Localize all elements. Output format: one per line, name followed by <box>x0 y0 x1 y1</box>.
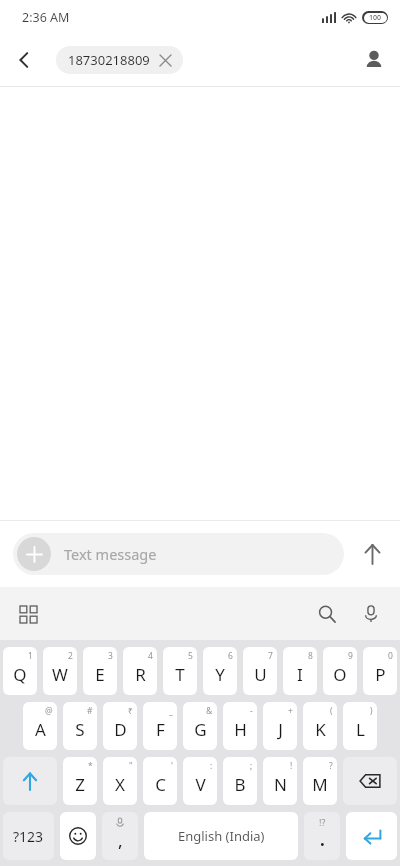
staticText: ) <box>370 705 373 717</box>
button[interactable]: Backspace <box>343 757 397 805</box>
staticText: P <box>375 663 386 686</box>
staticText: D <box>114 718 127 741</box>
staticText: A <box>35 718 46 741</box>
staticText: Y <box>215 663 225 686</box>
staticText: & <box>206 705 213 717</box>
staticText: B <box>234 773 246 796</box>
staticText: : <box>210 760 213 772</box>
button[interactable]: * <box>63 757 97 805</box>
button[interactable]: ; <box>223 757 257 805</box>
staticText: T <box>175 663 185 686</box>
staticText: C <box>155 773 166 796</box>
staticText: - <box>250 705 253 717</box>
button[interactable]: 0 <box>363 647 397 695</box>
staticText: V <box>195 773 206 796</box>
button[interactable]: ₹ <box>103 702 137 750</box>
staticText: 100 <box>369 13 382 23</box>
staticText: 6 <box>228 650 233 662</box>
staticText: Text message <box>64 544 157 564</box>
staticText: N <box>274 773 287 796</box>
staticText: 18730218809 <box>68 51 150 69</box>
button[interactable]: @ <box>23 702 57 750</box>
button[interactable]: Emoji <box>60 812 96 860</box>
staticText: H <box>234 718 247 741</box>
button[interactable]: Keyboard layouts <box>10 596 46 632</box>
staticText: O <box>333 663 347 686</box>
staticText: 4 <box>148 650 153 662</box>
button[interactable]: Voice input <box>352 595 390 633</box>
button[interactable]: " <box>103 757 137 805</box>
staticText: K <box>315 718 326 741</box>
button[interactable]: Send <box>344 526 400 582</box>
staticText: U <box>254 663 267 686</box>
staticText: 7 <box>268 650 273 662</box>
staticText: X <box>115 773 125 796</box>
staticText: G <box>194 718 207 741</box>
staticText: ₹ <box>128 705 133 717</box>
staticText: I <box>297 663 303 686</box>
staticText: 5 <box>188 650 193 662</box>
staticText: 9 <box>348 650 353 662</box>
button[interactable]: Attach <box>17 537 51 571</box>
button[interactable]: + <box>263 702 297 750</box>
staticText: ; <box>250 760 253 772</box>
button[interactable]: 4 <box>123 647 157 695</box>
staticText: ? <box>329 760 333 772</box>
button[interactable]: & <box>183 702 217 750</box>
staticText: !? <box>319 816 326 828</box>
staticText: # <box>87 705 93 717</box>
button[interactable]: ' <box>143 757 177 805</box>
staticText: Z <box>75 773 85 796</box>
button[interactable]: ! <box>263 757 297 805</box>
staticText: L <box>356 718 365 741</box>
staticText: _ <box>169 705 173 717</box>
button[interactable]: Enter <box>346 812 397 860</box>
staticText: J <box>278 718 283 741</box>
button[interactable]: 1 <box>3 647 37 695</box>
button[interactable]: 18730218809 <box>56 46 183 74</box>
button[interactable]: Back <box>0 36 48 84</box>
button[interactable]: 2 <box>43 647 77 695</box>
staticText: M <box>312 773 328 796</box>
button[interactable]: 8 <box>283 647 317 695</box>
staticText: 3 <box>108 650 113 662</box>
staticText: . <box>320 828 325 851</box>
staticText: English (India) <box>178 827 265 845</box>
button[interactable]: !? <box>304 812 340 860</box>
button[interactable]: English (India) <box>144 812 298 860</box>
button[interactable]: 3 <box>83 647 117 695</box>
staticText: ' <box>171 760 173 772</box>
staticText: 1 <box>28 650 33 662</box>
button[interactable]: _ <box>143 702 177 750</box>
button[interactable]: 6 <box>203 647 237 695</box>
staticText: ( <box>330 705 333 717</box>
staticText: + <box>288 705 293 717</box>
button[interactable]: ? <box>303 757 337 805</box>
staticText: R <box>135 663 146 686</box>
button[interactable]: ) <box>343 702 377 750</box>
staticText: 8 <box>308 650 313 662</box>
button[interactable]: 7 <box>243 647 277 695</box>
button[interactable]: Search <box>308 595 346 633</box>
button[interactable]: Attach <box>13 533 344 575</box>
staticText: * <box>88 760 93 772</box>
button[interactable]: Contact <box>348 34 400 86</box>
staticText: Q <box>13 663 27 686</box>
button[interactable]: # <box>63 702 97 750</box>
button[interactable]: Symbols <box>3 812 54 860</box>
staticText: S <box>75 718 85 741</box>
staticText: " <box>129 760 133 772</box>
staticText: 2:36 AM <box>22 9 70 26</box>
staticText: F <box>156 718 165 741</box>
button[interactable]: Shift <box>3 757 57 805</box>
button[interactable]: : <box>183 757 217 805</box>
staticText: E <box>95 663 105 686</box>
staticText: ?123 <box>13 827 44 846</box>
button[interactable]: ( <box>303 702 337 750</box>
button[interactable]: 9 <box>323 647 357 695</box>
staticText: @ <box>45 705 53 717</box>
button[interactable]: , <box>102 812 138 860</box>
staticText: , <box>118 829 123 852</box>
button[interactable]: 5 <box>163 647 197 695</box>
button[interactable]: - <box>223 702 257 750</box>
